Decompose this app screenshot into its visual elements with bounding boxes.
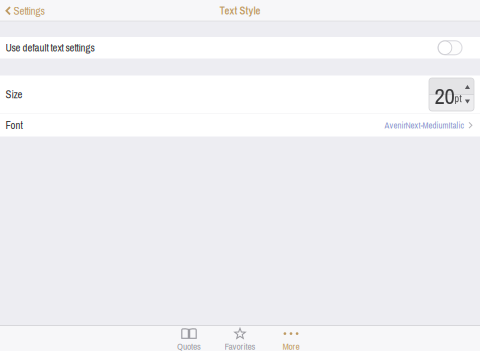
staticText: More: [282, 340, 299, 351]
staticText: AvenirNext-MediumItalic: [384, 119, 464, 131]
staticText: Font: [5, 118, 22, 132]
button[interactable]: Favorites: [214, 325, 265, 351]
button[interactable]: More: [265, 325, 316, 351]
staticText: Text Style: [219, 4, 260, 18]
staticText: Size: [5, 87, 22, 102]
button[interactable]: Quotes: [163, 325, 214, 351]
button[interactable]: Settings: [0, 0, 44, 23]
staticText: 20: [434, 81, 454, 111]
staticText: pt: [454, 92, 461, 105]
staticText: Settings: [13, 3, 44, 18]
button[interactable]: Size: [0, 75, 480, 113]
button[interactable]: Use default text settings: [0, 37, 480, 58]
staticText: Use default text settings: [5, 41, 94, 55]
button[interactable]: Font: [0, 114, 480, 136]
staticText: Favorites: [224, 340, 255, 351]
staticText: Quotes: [177, 340, 201, 351]
